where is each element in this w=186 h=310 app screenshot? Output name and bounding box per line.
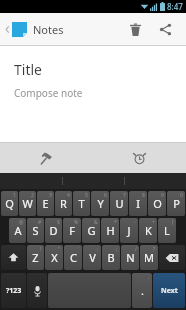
staticText: H	[106, 223, 115, 238]
staticText: 2	[31, 192, 34, 199]
button[interactable]: C	[64, 245, 82, 270]
staticText: J	[127, 223, 131, 238]
staticText: F	[69, 223, 75, 238]
button[interactable]: Y	[91, 191, 109, 216]
staticText: 9	[161, 192, 164, 199]
button[interactable]: I	[129, 191, 147, 216]
staticText: Z	[32, 250, 39, 265]
button[interactable]: O	[148, 191, 166, 216]
staticText: C	[70, 250, 77, 265]
button[interactable]: U	[110, 191, 128, 216]
staticText: G	[87, 223, 96, 238]
staticText: M	[144, 250, 154, 265]
staticText: D	[49, 223, 58, 238]
staticText: 8:47	[167, 1, 183, 12]
button[interactable]: K	[139, 218, 157, 243]
button[interactable]: A	[9, 218, 26, 243]
button[interactable]: J	[120, 218, 138, 243]
button[interactable]: P	[167, 191, 185, 216]
button[interactable]: X	[45, 245, 63, 270]
button[interactable]: R	[55, 191, 72, 216]
staticText: Next	[161, 286, 178, 296]
staticText: U	[115, 196, 124, 211]
staticText: $	[57, 219, 60, 226]
button[interactable]: B	[102, 245, 120, 270]
staticText: (	[172, 219, 174, 226]
staticText: !	[40, 246, 42, 253]
staticText: 4	[67, 192, 70, 199]
button[interactable]: G	[82, 218, 100, 243]
staticText: @	[19, 219, 24, 226]
button[interactable]: Z	[27, 245, 44, 270]
staticText: 8	[142, 192, 145, 199]
staticText: "	[58, 246, 61, 253]
staticText: :	[97, 246, 99, 253]
staticText: Title	[14, 60, 42, 79]
staticText: B	[107, 250, 115, 265]
button[interactable]: M	[140, 245, 158, 270]
button[interactable]: H	[101, 218, 119, 243]
staticText: V	[89, 250, 96, 265]
button[interactable]: Voice input	[27, 273, 47, 308]
staticText: N	[126, 250, 135, 265]
button[interactable]: E	[37, 191, 54, 216]
staticText: +	[152, 219, 155, 226]
staticText: ?	[153, 246, 156, 253]
button[interactable]: S	[27, 218, 44, 243]
button[interactable]: Shift	[1, 245, 26, 270]
staticText: A	[14, 223, 22, 238]
button[interactable]: ?123	[1, 273, 26, 308]
staticText: -	[134, 219, 136, 226]
staticText: P	[173, 196, 180, 211]
staticText: ?123	[6, 286, 22, 296]
button[interactable]: L	[158, 218, 176, 243]
staticText: %	[74, 219, 79, 226]
staticText: X	[51, 250, 58, 265]
staticText: ,	[148, 274, 150, 281]
staticText: 1	[13, 192, 16, 199]
staticText: Compose note	[14, 86, 83, 100]
staticText: '	[78, 246, 80, 253]
button[interactable]: N	[121, 245, 139, 270]
staticText: I	[136, 196, 140, 211]
staticText: T	[78, 196, 85, 211]
button[interactable]: Delete	[120, 13, 150, 45]
button[interactable]: Space	[48, 273, 131, 308]
staticText: *	[114, 219, 117, 226]
staticText: ;	[116, 246, 118, 253]
staticText: Y	[97, 196, 104, 211]
staticText: L	[164, 223, 170, 238]
staticText: E	[42, 196, 49, 211]
staticText: W	[22, 196, 33, 211]
button[interactable]: .	[132, 273, 152, 308]
staticText: S	[32, 223, 39, 238]
button[interactable]: Pin note	[0, 143, 93, 173]
button[interactable]: D	[45, 218, 62, 243]
button[interactable]: Title	[0, 46, 186, 142]
staticText: /	[135, 246, 137, 253]
button[interactable]: Share	[150, 13, 180, 45]
staticText: 5	[85, 192, 88, 199]
staticText: K	[145, 223, 152, 238]
button[interactable]: Notes	[3, 18, 66, 41]
staticText: #	[38, 219, 42, 226]
staticText: .	[141, 283, 144, 298]
staticText: Notes	[33, 22, 64, 37]
staticText: 6	[104, 192, 107, 199]
button[interactable]: Delete	[159, 245, 185, 270]
button[interactable]: V	[83, 245, 101, 270]
staticText: 0	[180, 192, 183, 199]
button[interactable]: Next	[153, 273, 185, 308]
button[interactable]: W	[19, 191, 36, 216]
staticText: 7	[123, 192, 126, 199]
button[interactable]: Q	[1, 191, 18, 216]
staticText: R	[60, 196, 67, 211]
button[interactable]: F	[63, 218, 81, 243]
button[interactable]: T	[73, 191, 90, 216]
button[interactable]: Set reminder	[93, 143, 186, 173]
staticText: O	[153, 196, 162, 211]
staticText: 3	[49, 192, 52, 199]
